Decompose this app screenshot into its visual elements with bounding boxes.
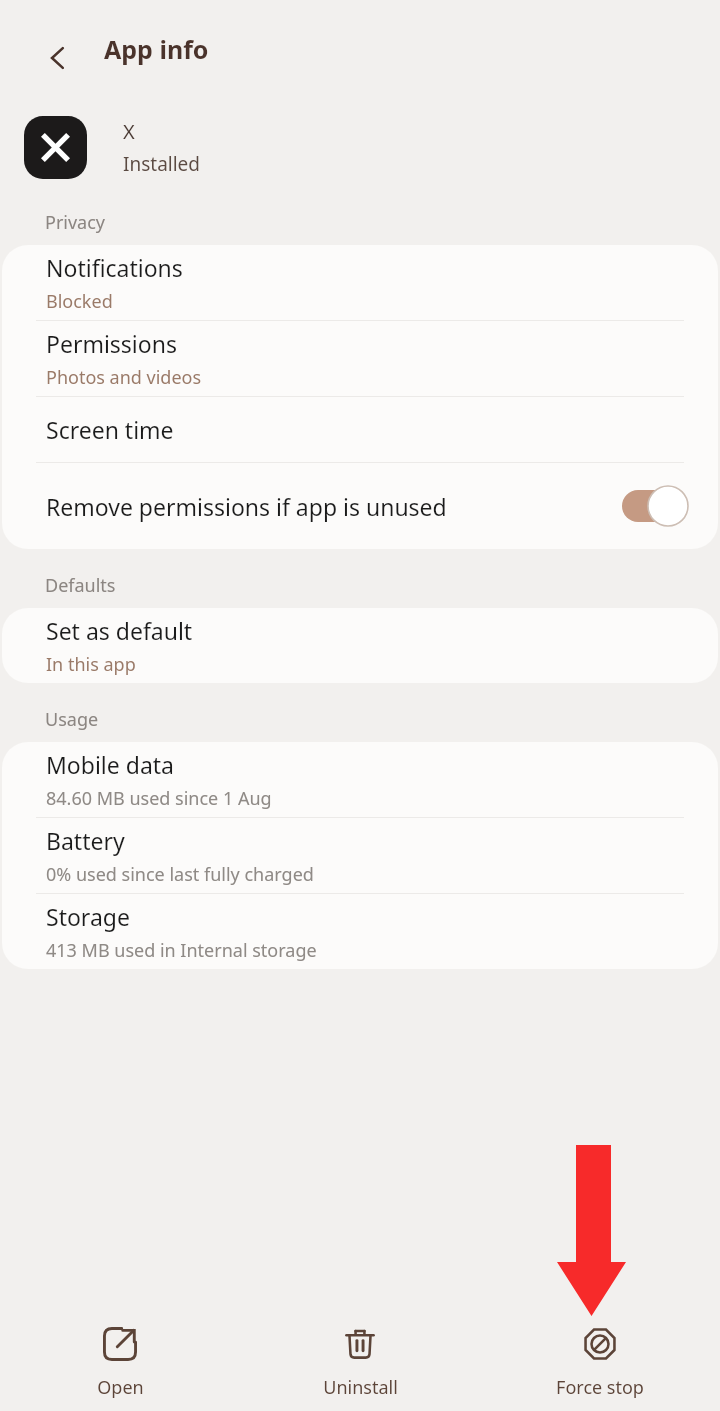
staticText: Force stop — [556, 1375, 644, 1400]
button[interactable]: Storage — [2, 894, 718, 969]
staticText: Privacy — [45, 210, 106, 235]
other: Uninstall — [343, 1327, 377, 1361]
staticText: Open — [97, 1375, 144, 1400]
staticText: App info — [104, 32, 209, 66]
staticText: Mobile data — [46, 749, 174, 780]
button[interactable]: Permissions — [2, 321, 718, 396]
button[interactable]: Battery — [2, 818, 718, 893]
staticText: Blocked — [46, 289, 113, 314]
staticText: Defaults — [45, 573, 116, 598]
staticText: Remove permissions if app is unused — [46, 491, 622, 522]
button[interactable]: Uninstall — [240, 1311, 480, 1411]
staticText: Usage — [45, 707, 99, 732]
staticText: 0% used since last fully charged — [46, 862, 314, 887]
staticText: Permissions — [46, 328, 177, 359]
staticText: Installed — [123, 151, 201, 177]
button[interactable]: Remove permissions if app is unused — [2, 463, 718, 549]
staticText: In this app — [46, 652, 136, 677]
other: Open — [103, 1327, 137, 1361]
button[interactable]: Notifications — [2, 245, 718, 320]
button[interactable]: Screen time — [2, 397, 718, 462]
button[interactable]: Force stop — [480, 1311, 720, 1411]
button[interactable]: Mobile data — [2, 742, 718, 817]
staticText: Notifications — [46, 252, 183, 283]
other: Force stop — [583, 1327, 617, 1361]
staticText: 84.60 MB used since 1 Aug — [46, 786, 272, 811]
button[interactable]: Open — [0, 1311, 240, 1411]
staticText: Storage — [46, 901, 130, 932]
staticText: X — [123, 118, 135, 145]
button[interactable]: Set as default — [2, 608, 718, 683]
staticText: Battery — [46, 825, 125, 856]
staticText: 413 MB used in Internal storage — [46, 938, 317, 963]
button[interactable]: Back — [26, 26, 90, 90]
staticText: Photos and videos — [46, 365, 202, 390]
staticText: Uninstall — [323, 1375, 398, 1400]
staticText: Screen time — [46, 414, 174, 445]
staticText: Set as default — [46, 615, 193, 646]
